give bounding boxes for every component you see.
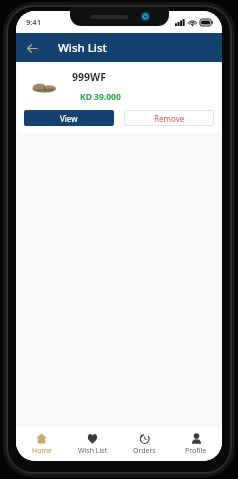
staticText: View	[60, 113, 78, 124]
staticText: Profile	[185, 446, 207, 456]
button[interactable]: View	[24, 110, 114, 126]
staticText: KD 39.000	[80, 91, 121, 103]
button[interactable]: 999WF	[17, 64, 221, 133]
staticText: Wish List	[78, 446, 108, 456]
button[interactable]: Back	[22, 38, 42, 58]
button[interactable]: Orders	[118, 427, 170, 461]
button[interactable]: Wish List	[67, 427, 118, 461]
staticText: Home	[32, 446, 52, 456]
button[interactable]: Home	[16, 427, 67, 461]
button[interactable]: Remove	[124, 110, 214, 126]
staticText: Orders	[133, 446, 156, 456]
staticText: 9:41	[26, 17, 41, 27]
staticText: 999WF	[72, 70, 106, 84]
button[interactable]: Profile	[170, 427, 222, 461]
staticText: Wish List	[58, 40, 107, 56]
staticText: Remove	[154, 113, 185, 124]
